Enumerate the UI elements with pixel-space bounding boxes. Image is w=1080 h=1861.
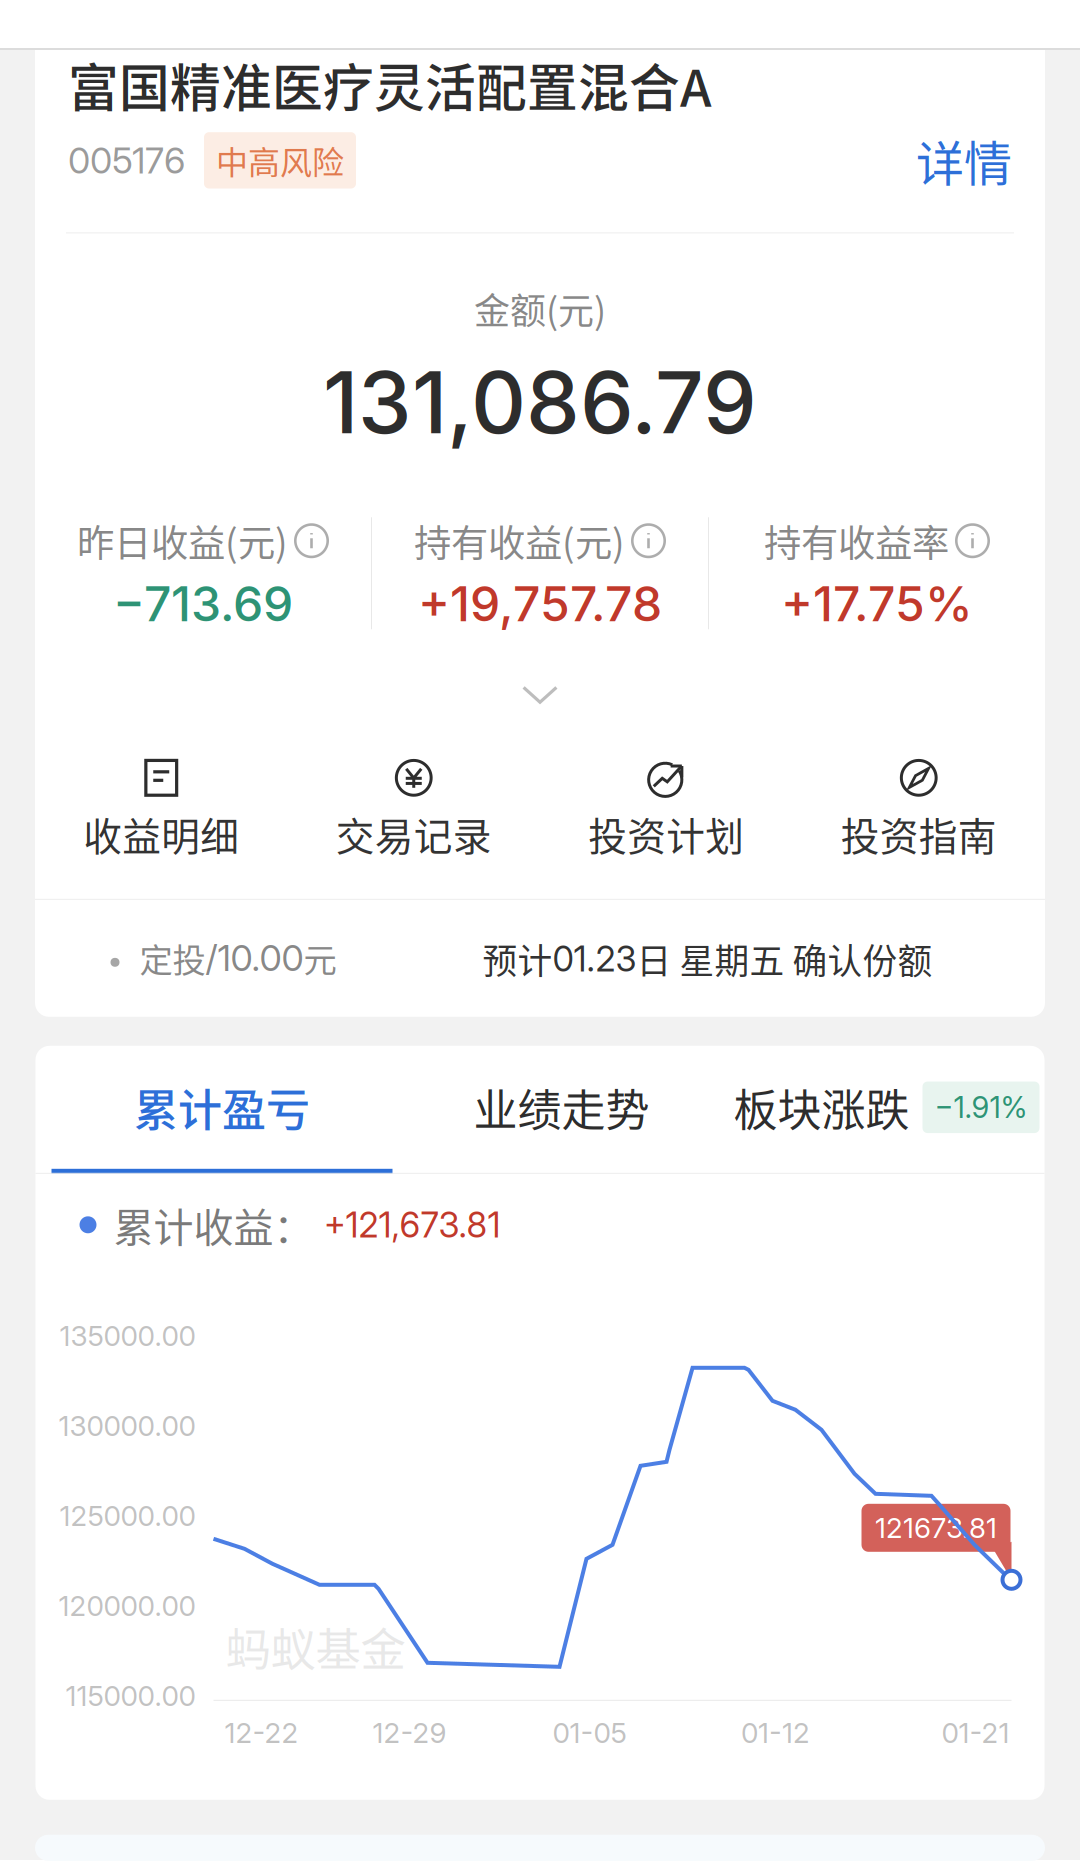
staticText: 125000.00 (59, 1499, 195, 1533)
staticText: 01-21 (941, 1716, 1009, 1750)
staticText: 12-29 (372, 1716, 446, 1750)
staticText: 交易记录 (336, 806, 492, 862)
staticText: 持有收益率 (764, 514, 949, 568)
staticText: 累计盈亏 (134, 1075, 310, 1139)
staticText: 昨日收益(元) (77, 514, 288, 568)
staticText: 预计 (482, 934, 552, 984)
staticText: 01-12 (741, 1716, 810, 1750)
staticText: 板块涨跌 (733, 1075, 909, 1139)
staticText: 持有收益(元) (414, 514, 625, 568)
staticText: 01-05 (552, 1716, 626, 1750)
staticText: 投资计划 (588, 806, 744, 862)
staticText: 135000.00 (59, 1319, 195, 1353)
staticText: 定投 (139, 934, 205, 982)
staticText: 累计收益： (113, 1196, 313, 1254)
button[interactable]: 板块涨跌 (733, 1046, 1055, 1169)
staticText: 121673.81 (875, 1511, 997, 1545)
button[interactable]: 详情 (916, 126, 1012, 195)
staticText: 元 (303, 934, 336, 982)
staticText: 金额(元) (474, 282, 606, 334)
staticText: 01.23 (552, 938, 636, 980)
staticText: 日 星期五 确认份额 (636, 934, 932, 984)
staticText: /10.00 (205, 936, 303, 980)
staticText: 中高风险 (216, 137, 344, 183)
staticText: 业绩走势 (473, 1075, 649, 1139)
button[interactable]: 定投 (35, 900, 1044, 1017)
staticText: 130000.00 (58, 1409, 195, 1443)
button[interactable]: 交易记录 (287, 759, 540, 862)
staticText: 收益明细 (83, 806, 239, 862)
staticText: 120000.00 (58, 1589, 195, 1623)
button[interactable]: 投资指南 (792, 759, 1045, 862)
staticText: 富国精准医疗灵活配置混合A (68, 48, 712, 121)
staticText: 12-22 (224, 1716, 298, 1750)
button[interactable]: 投资计划 (540, 759, 792, 862)
button[interactable]: Collapse details (522, 686, 558, 704)
staticText: 005176 (68, 139, 185, 182)
staticText: +19,757.78 (418, 575, 662, 633)
staticText: +121,673.81 (323, 1204, 500, 1246)
staticText: −1.91% (934, 1090, 1027, 1125)
staticText: 115000.00 (65, 1679, 195, 1713)
button[interactable]: 收益明细 (35, 759, 287, 862)
staticText: −713.69 (113, 575, 293, 633)
staticText: 蚂蚁基金 (225, 1614, 405, 1679)
button[interactable]: 业绩走势 (441, 1046, 681, 1169)
staticText: +17.75% (781, 575, 973, 633)
button[interactable]: 累计盈亏 (51, 1046, 392, 1174)
staticText: 详情 (916, 126, 1012, 195)
staticText: 投资指南 (841, 806, 997, 862)
staticText: 131,086.79 (323, 350, 757, 454)
